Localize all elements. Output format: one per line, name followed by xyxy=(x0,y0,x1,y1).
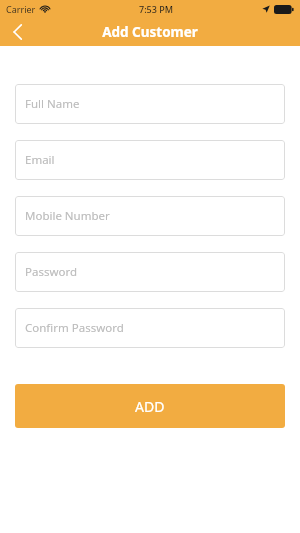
staticText: Confirm Password xyxy=(25,320,124,336)
button[interactable]: ADD xyxy=(15,384,285,428)
staticText: Mobile Number xyxy=(25,208,110,224)
button[interactable]: Mobile Number xyxy=(15,196,285,236)
button[interactable]: Full Name xyxy=(15,84,285,124)
staticText: Full Name xyxy=(25,96,80,112)
staticText: ADD xyxy=(135,397,165,416)
button[interactable]: Back xyxy=(0,18,34,46)
staticText: 7:53 PM xyxy=(139,3,173,15)
staticText: Carrier xyxy=(6,3,36,15)
staticText: Password xyxy=(25,264,78,280)
button[interactable]: Confirm Password xyxy=(15,308,285,348)
staticText: Add Customer xyxy=(102,23,198,41)
button[interactable]: Password xyxy=(15,252,285,292)
staticText: Email xyxy=(25,152,55,168)
button[interactable]: Email xyxy=(15,140,285,180)
